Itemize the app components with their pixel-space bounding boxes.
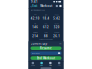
staticText: 26.1 [53,34,60,38]
button[interactable]: End Workout [30,56,61,60]
staticText: Resume [40,46,52,50]
button[interactable]: You [55,62,64,66]
staticText: 146 [32,25,38,29]
staticText: 320 [54,25,60,29]
staticText: CAD [44,32,47,33]
staticText: HR [34,23,36,25]
staticText: Back [32,4,37,8]
button[interactable]: Stats [46,62,55,66]
staticText: Current Lap [30,42,47,45]
staticText: 42:10 [31,17,40,20]
staticText: 88 [44,34,48,38]
staticText: PACE [55,14,59,16]
button[interactable]: Share [56,5,58,7]
staticText: POWER [33,32,38,33]
staticText: DIST [44,14,47,16]
staticText: Stats [49,64,52,66]
staticText: Morning Ride · 8:12 AM [30,9,44,11]
staticText: Ride [40,64,43,66]
button[interactable]: Home [28,62,37,66]
staticText: CAL [44,23,47,25]
staticText: You [58,64,61,66]
staticText: End Workout [37,56,55,60]
button[interactable]: ‹ [30,4,37,8]
staticText: ELEV [55,23,59,25]
button[interactable]: More [59,5,61,7]
staticText: 612 [43,25,49,29]
staticText: 18.4 [42,17,49,20]
staticText: Home [31,64,35,66]
staticText: Heart Zone [32,52,40,54]
staticText: Auto-pause enabled [39,39,53,40]
staticText: 5:42 [53,17,60,20]
staticText: SPEED [54,32,59,33]
button[interactable]: Ride [37,62,46,66]
staticText: TIME [34,14,37,16]
staticText: 3 of 6 [58,43,61,45]
button[interactable]: Resume [30,46,61,50]
staticText: ‹ [30,3,31,9]
staticText: 214 [32,34,38,38]
staticText: Workout [40,4,52,8]
staticText: 9:41 [31,0,38,3]
